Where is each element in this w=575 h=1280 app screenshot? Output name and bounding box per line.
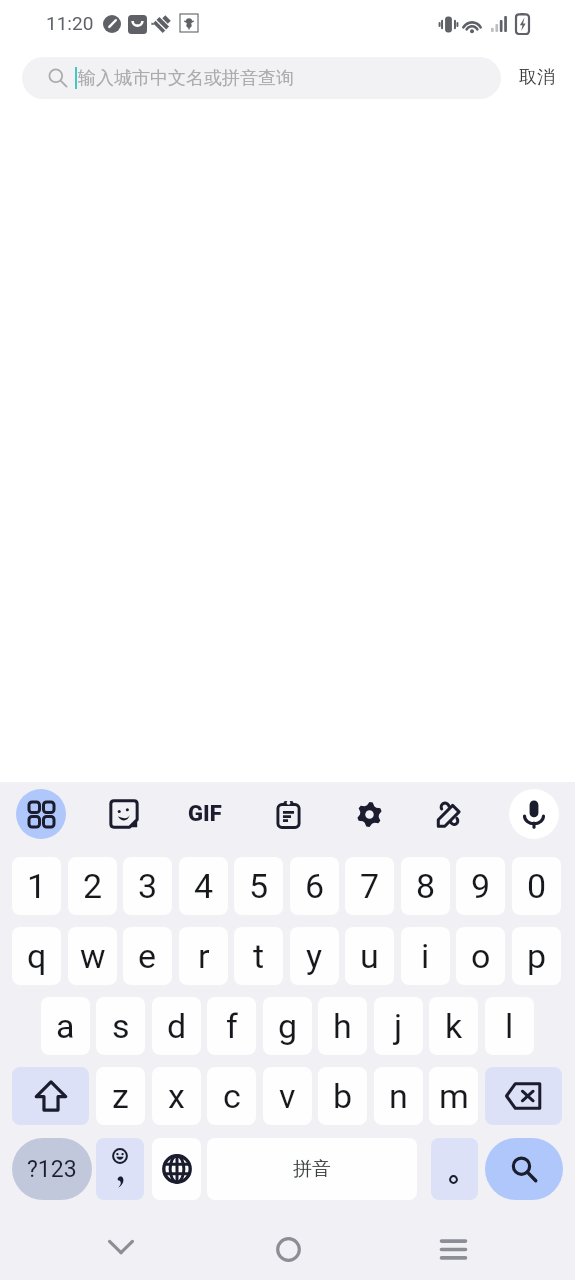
button[interactable]: t bbox=[234, 927, 283, 985]
button[interactable]: 4 bbox=[179, 857, 228, 915]
staticText: r bbox=[198, 936, 210, 976]
staticText: i bbox=[421, 936, 430, 976]
staticText: 1 bbox=[27, 866, 47, 906]
button[interactable]: 9 bbox=[456, 857, 505, 915]
button[interactable]: Recents bbox=[429, 1225, 477, 1273]
button[interactable]: Keyboard menu bbox=[16, 789, 66, 839]
staticText: u bbox=[360, 936, 379, 976]
staticText: q bbox=[27, 936, 47, 976]
staticText: 2 bbox=[83, 866, 103, 906]
button[interactable]: o bbox=[456, 927, 505, 985]
button[interactable]: w bbox=[68, 927, 117, 985]
button[interactable]: Clipboard bbox=[264, 790, 312, 838]
staticText: l bbox=[505, 1006, 514, 1046]
staticText: d bbox=[167, 1006, 187, 1046]
button[interactable]: g bbox=[263, 997, 312, 1055]
button[interactable]: u bbox=[345, 927, 394, 985]
staticText: f bbox=[226, 1006, 238, 1046]
button[interactable]: Emoji bbox=[96, 1138, 144, 1200]
button[interactable]: f bbox=[207, 997, 256, 1055]
button[interactable]: 2 bbox=[68, 857, 117, 915]
button[interactable]: Stickers bbox=[100, 790, 148, 838]
staticText: ?123 bbox=[27, 1156, 77, 1183]
staticText: p bbox=[527, 936, 547, 976]
staticText: o bbox=[471, 936, 491, 976]
button[interactable]: y bbox=[290, 927, 339, 985]
button[interactable]: 拼音 bbox=[207, 1138, 417, 1200]
staticText: n bbox=[389, 1076, 408, 1116]
button[interactable]: c bbox=[207, 1067, 256, 1125]
staticText: w bbox=[80, 936, 106, 976]
staticText: j bbox=[394, 1006, 403, 1046]
staticText: g bbox=[278, 1006, 298, 1046]
staticText: c bbox=[223, 1076, 241, 1116]
button[interactable]: z bbox=[96, 1067, 145, 1125]
staticText: x bbox=[168, 1076, 185, 1116]
button[interactable]: a bbox=[41, 997, 90, 1055]
button[interactable]: j bbox=[374, 997, 423, 1055]
staticText: e bbox=[138, 936, 157, 976]
button[interactable]: 1 bbox=[12, 857, 61, 915]
button[interactable]: 0 bbox=[512, 857, 561, 915]
staticText: 0 bbox=[527, 866, 547, 906]
button[interactable]: Shift bbox=[12, 1067, 89, 1125]
button[interactable]: i bbox=[401, 927, 450, 985]
button[interactable]: 7 bbox=[345, 857, 394, 915]
staticText: 11:20 bbox=[46, 12, 94, 34]
button[interactable]: k bbox=[429, 997, 478, 1055]
button[interactable]: Symbols bbox=[12, 1138, 92, 1200]
button[interactable]: b bbox=[318, 1067, 367, 1125]
staticText: 5 bbox=[249, 866, 269, 906]
button[interactable]: m bbox=[429, 1067, 478, 1125]
button[interactable]: 6 bbox=[290, 857, 339, 915]
button[interactable]: 输入城市中文名或拼音查询 bbox=[22, 57, 501, 99]
staticText: 取消 bbox=[519, 66, 555, 89]
staticText: z bbox=[112, 1076, 129, 1116]
button[interactable]: Period bbox=[431, 1138, 478, 1200]
staticText: 8 bbox=[416, 866, 436, 906]
button[interactable]: Settings bbox=[345, 790, 393, 838]
button[interactable]: 8 bbox=[401, 857, 450, 915]
staticText: y bbox=[306, 936, 323, 976]
button[interactable]: Switch language bbox=[152, 1138, 201, 1200]
staticText: 3 bbox=[138, 866, 158, 906]
staticText: b bbox=[333, 1076, 353, 1116]
button[interactable]: Handwriting bbox=[426, 790, 474, 838]
button[interactable]: v bbox=[263, 1067, 312, 1125]
staticText: k bbox=[445, 1006, 463, 1046]
button[interactable]: e bbox=[123, 927, 172, 985]
button[interactable]: h bbox=[318, 997, 367, 1055]
button[interactable]: p bbox=[512, 927, 561, 985]
button[interactable]: GIF bbox=[181, 790, 229, 838]
button[interactable]: n bbox=[374, 1067, 423, 1125]
staticText: a bbox=[56, 1006, 75, 1046]
button[interactable]: d bbox=[152, 997, 201, 1055]
button[interactable]: x bbox=[152, 1067, 201, 1125]
staticText: 6 bbox=[305, 866, 325, 906]
button[interactable]: q bbox=[12, 927, 61, 985]
button[interactable]: l bbox=[485, 997, 534, 1055]
staticText: GIF bbox=[188, 801, 222, 827]
button[interactable]: Hide keyboard bbox=[97, 1223, 145, 1271]
button[interactable]: 取消 bbox=[511, 61, 563, 94]
button[interactable]: Search bbox=[485, 1138, 563, 1200]
staticText: 9 bbox=[471, 866, 491, 906]
staticText: s bbox=[112, 1006, 130, 1046]
staticText: 7 bbox=[360, 866, 380, 906]
button[interactable]: Home bbox=[264, 1225, 312, 1273]
staticText: h bbox=[333, 1006, 352, 1046]
staticText: m bbox=[439, 1076, 469, 1116]
button[interactable]: r bbox=[179, 927, 228, 985]
staticText: v bbox=[279, 1076, 296, 1116]
button[interactable]: s bbox=[96, 997, 145, 1055]
staticText: 4 bbox=[194, 866, 214, 906]
button[interactable]: 3 bbox=[123, 857, 172, 915]
button[interactable]: 5 bbox=[234, 857, 283, 915]
staticText: 拼音 bbox=[293, 1157, 331, 1181]
button[interactable]: Voice input bbox=[509, 789, 559, 839]
staticText: 输入城市中文名或拼音查询 bbox=[78, 67, 294, 90]
staticText: t bbox=[253, 936, 265, 976]
button[interactable]: Backspace bbox=[485, 1067, 562, 1125]
